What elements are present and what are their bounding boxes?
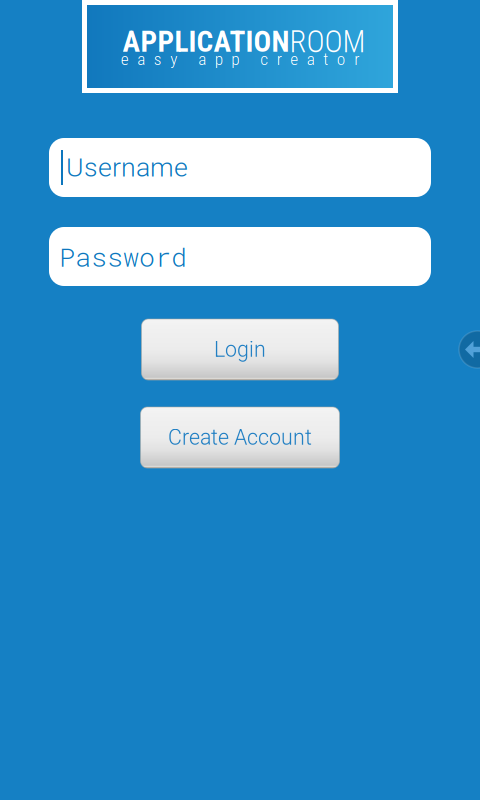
button[interactable]: Login [141, 319, 338, 380]
button[interactable]: Open menu [459, 331, 480, 368]
staticText: Password [59, 239, 187, 274]
staticText: easy app creator [121, 49, 359, 69]
staticText: ROOM [289, 24, 365, 60]
staticText: APPLICATION [122, 25, 289, 59]
staticText: Username [66, 152, 188, 183]
staticText: Login [214, 337, 266, 362]
button[interactable]: Create Account [140, 407, 339, 468]
staticText: Create Account [168, 425, 312, 450]
